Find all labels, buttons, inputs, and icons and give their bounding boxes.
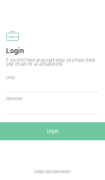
staticText: your emails for an activation link.	[6, 62, 63, 67]
staticText: Password	[6, 97, 22, 101]
button[interactable]: Forgot your password?	[0, 168, 105, 176]
staticText: Login	[6, 47, 24, 55]
staticText: Email	[6, 76, 15, 80]
button[interactable]: Login	[0, 122, 105, 140]
staticText: If you don't have an account setup yet p…	[6, 58, 95, 63]
staticText: Forgot your password?	[34, 169, 71, 174]
staticText: Login	[46, 129, 58, 134]
